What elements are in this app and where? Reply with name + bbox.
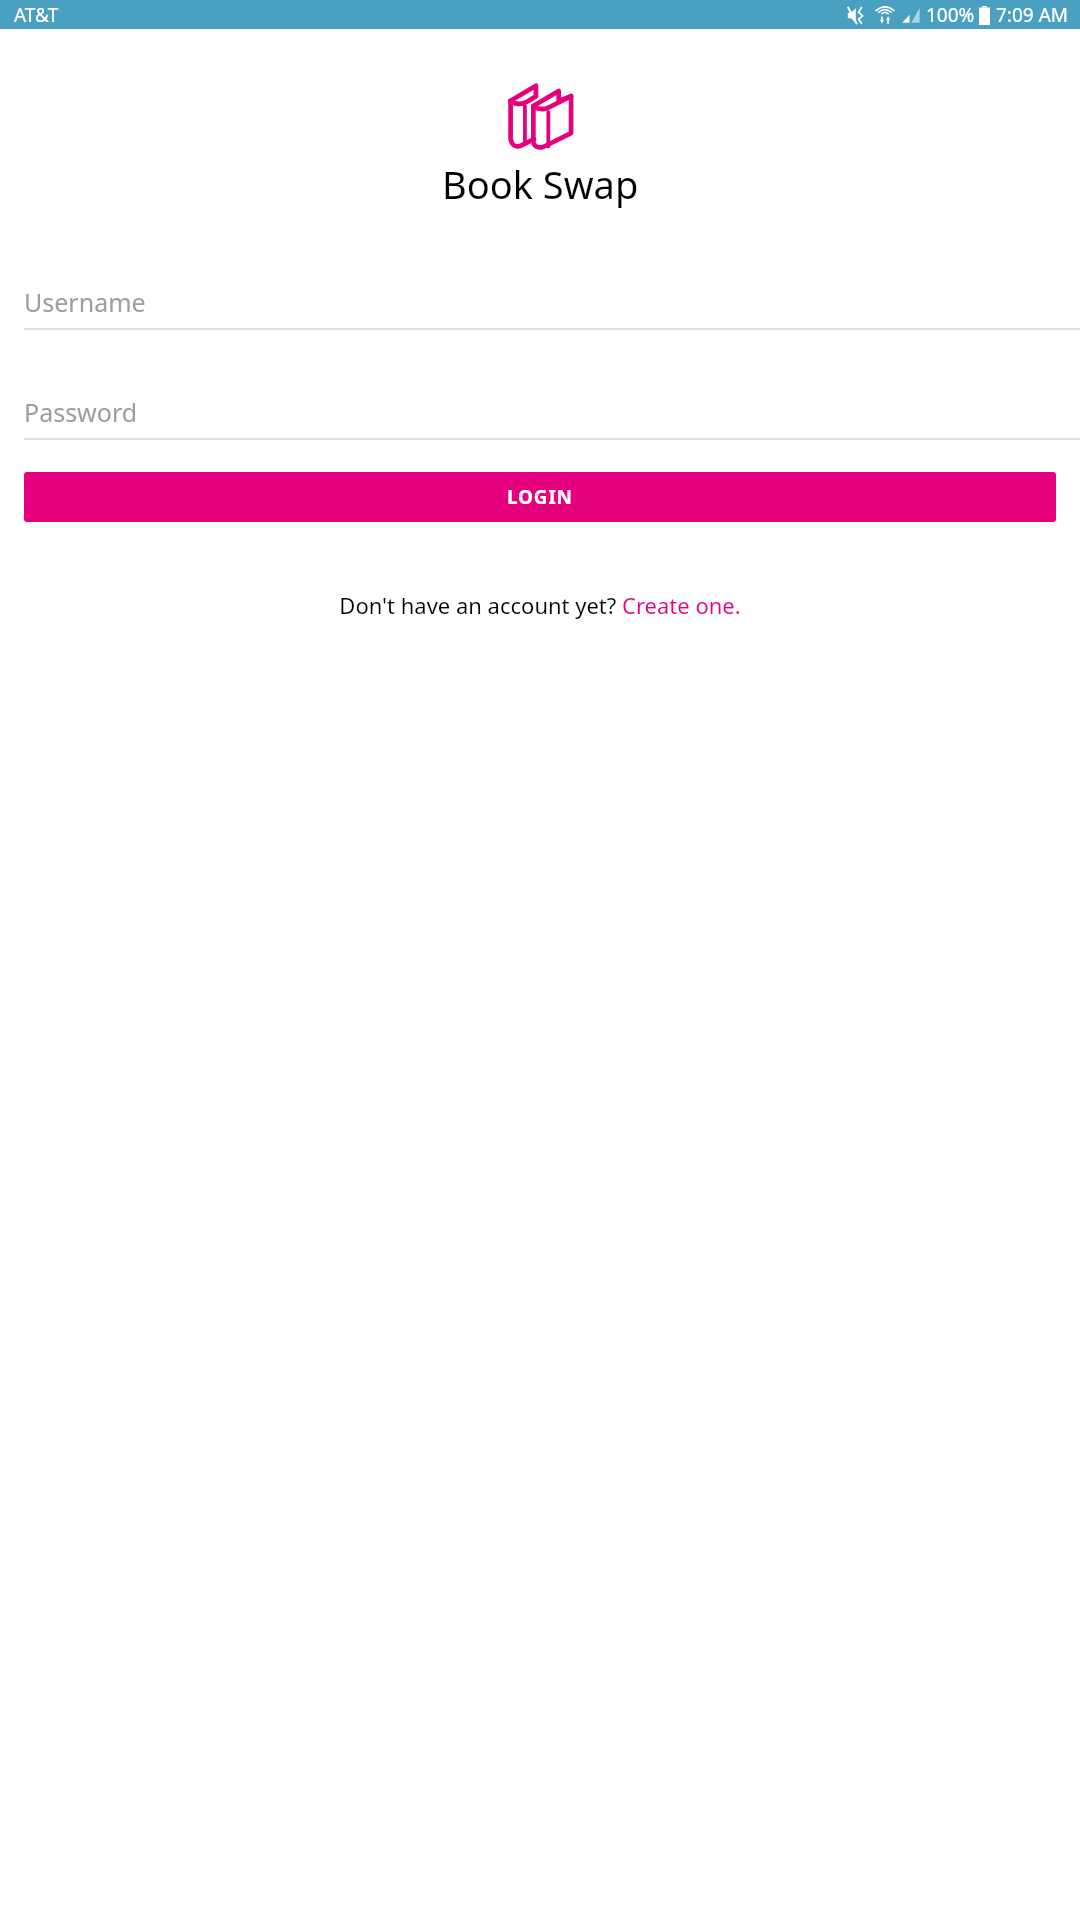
other: Sound off, vibrate bbox=[847, 7, 867, 24]
staticText: Username bbox=[24, 285, 146, 319]
other: Mobile signal bbox=[902, 7, 920, 24]
staticText: Don't have an account yet? Create one. bbox=[339, 590, 741, 620]
staticText: Password bbox=[24, 395, 138, 429]
other: Book Swap logo bbox=[508, 83, 573, 149]
staticText: 100% bbox=[926, 2, 975, 28]
staticText: Book Swap bbox=[442, 158, 639, 210]
button[interactable]: Password bbox=[0, 386, 1080, 438]
button[interactable]: Username bbox=[0, 276, 1080, 328]
button[interactable]: LOGIN bbox=[24, 472, 1056, 522]
staticText: AT&T bbox=[14, 2, 59, 28]
staticText: 7:09 AM bbox=[996, 2, 1069, 28]
button[interactable]: Don't have an account yet? Create one. bbox=[0, 590, 1080, 620]
other: Wi-Fi bbox=[876, 7, 894, 24]
staticText: LOGIN bbox=[507, 484, 573, 510]
other: Battery full bbox=[979, 6, 990, 25]
